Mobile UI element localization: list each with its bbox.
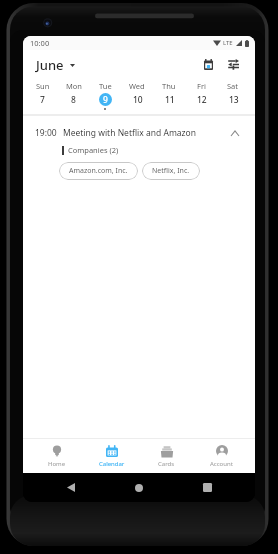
staticText: Fri (197, 81, 206, 91)
staticText: 10:00 (30, 38, 50, 48)
staticText: 9 (103, 94, 108, 106)
button[interactable]: Home (105, 473, 173, 502)
staticText: Wed (129, 81, 145, 91)
staticText: Tue (99, 81, 112, 91)
button[interactable]: Home (29, 439, 84, 473)
button[interactable]: 19:00 (23, 127, 255, 139)
staticText: Mon (66, 81, 82, 91)
button[interactable]: Amazon.com, Inc. (59, 162, 138, 180)
staticText: Calendar (99, 460, 125, 468)
staticText: Thu (162, 81, 176, 91)
button[interactable]: Filter (225, 56, 242, 73)
staticText: 12 (197, 94, 207, 106)
staticText: Sat (227, 81, 239, 91)
button[interactable]: Cards (139, 439, 194, 473)
button[interactable]: Back (37, 473, 105, 502)
button[interactable]: Netflix, Inc. (142, 162, 200, 180)
button[interactable]: June (23, 52, 83, 78)
button[interactable]: Recent apps (173, 473, 241, 502)
button[interactable]: Fri (185, 79, 217, 114)
button[interactable]: Sun (27, 79, 58, 114)
button[interactable]: Tue (89, 79, 121, 114)
staticText: Netflix, Inc. (152, 166, 190, 176)
staticText: June (36, 56, 64, 74)
button[interactable]: Account (194, 439, 249, 473)
button[interactable]: Sat (217, 79, 249, 114)
button[interactable]: Thu (153, 79, 185, 114)
staticText: Home (48, 460, 66, 468)
staticText: Companies (2) (68, 145, 119, 155)
button[interactable]: Wed (121, 79, 153, 114)
staticText: 19:00 (35, 127, 57, 139)
staticText: LTE (223, 39, 233, 47)
button[interactable]: Mon (58, 79, 89, 114)
staticText: Cards (158, 460, 175, 468)
staticText: Sun (36, 81, 50, 91)
staticText: Amazon.com, Inc. (69, 166, 128, 176)
button[interactable]: Calendar (84, 439, 139, 473)
staticText: 8 (71, 94, 76, 106)
staticText: Account (210, 460, 233, 468)
staticText: 13 (229, 94, 239, 106)
staticText: 7 (40, 94, 45, 106)
staticText: 11 (165, 94, 175, 106)
staticText: Meeting with Netflix and Amazon (63, 127, 196, 139)
staticText: 10 (133, 94, 143, 106)
button[interactable]: Today (200, 56, 217, 73)
